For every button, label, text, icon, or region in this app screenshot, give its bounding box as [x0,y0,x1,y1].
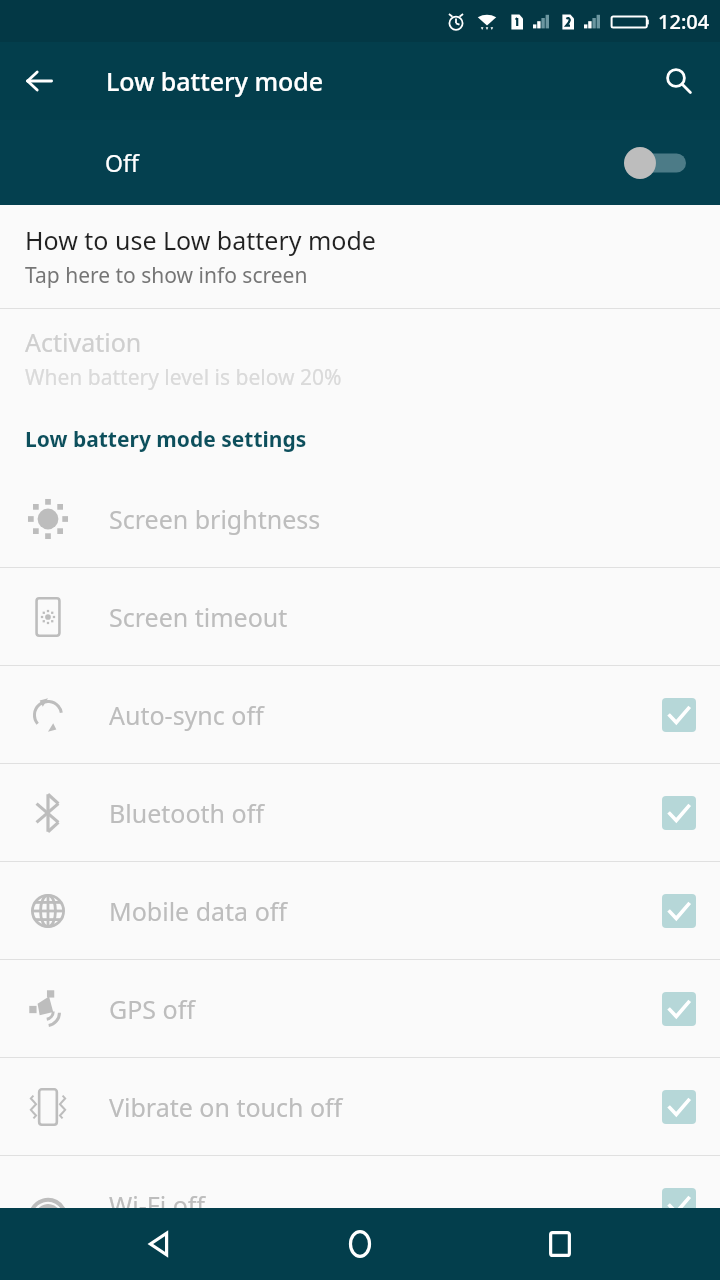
button[interactable]: Auto-sync off [0,666,720,763]
button[interactable]: Back [8,50,70,112]
button[interactable]: Bluetooth off [0,764,720,861]
button[interactable]: Activation [0,309,720,408]
staticText: Vibrate on touch off [109,1090,343,1124]
button[interactable]: Back [120,1208,200,1280]
staticText: Auto-sync off [109,698,264,732]
staticText: How to use Low battery mode [25,223,376,257]
staticText: Bluetooth off [109,796,264,830]
button[interactable]: Off [0,120,720,205]
button[interactable]: Vibrate on touch off [0,1058,720,1155]
staticText: Off [105,147,139,178]
button[interactable]: Recent apps [520,1208,600,1280]
staticText: Low battery mode [106,64,324,98]
button[interactable]: Home [320,1208,400,1280]
button[interactable]: GPS off [0,960,720,1057]
staticText: When battery level is below 20% [25,363,342,392]
staticText: Screen brightness [109,502,321,536]
staticText: Wi-Fi off [109,1188,206,1222]
staticText: 12:04 [658,8,710,35]
staticText: Mobile data off [109,894,287,928]
button[interactable]: Search [648,50,710,112]
staticText: Activation [25,325,142,359]
button[interactable]: Screen timeout [0,568,720,665]
staticText: Screen timeout [109,600,288,634]
button[interactable]: How to use Low battery mode [0,205,720,308]
staticText: Low battery mode settings [25,425,307,454]
button[interactable]: Screen brightness [0,470,720,567]
button[interactable]: Wi-Fi off [0,1156,720,1253]
staticText: GPS off [109,992,195,1026]
staticText: Tap here to show info screen [25,261,308,290]
button[interactable]: Mobile data off [0,862,720,959]
